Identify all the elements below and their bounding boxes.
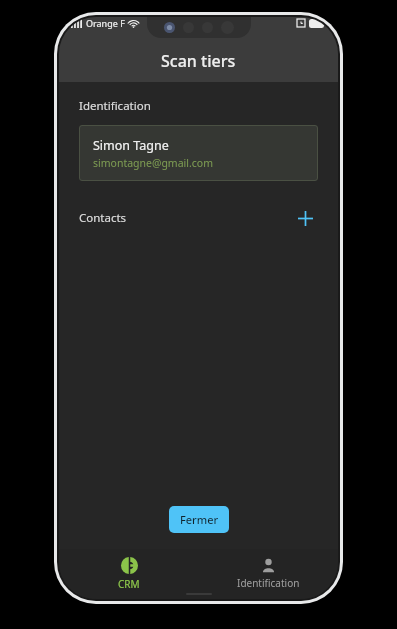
button[interactable]: Fermer [169, 506, 229, 533]
staticText: Identification [237, 576, 300, 590]
button[interactable]: Identification [198, 549, 338, 599]
staticText: Identification [79, 98, 151, 114]
button[interactable]: Add contact [292, 205, 318, 231]
button[interactable]: Simon Tagne [79, 125, 318, 181]
staticText: simontagne@gmail.com [93, 156, 213, 170]
staticText: Scan tiers [161, 50, 236, 72]
button[interactable]: CRM [59, 549, 198, 599]
staticText: CRM [118, 577, 140, 591]
staticText: Simon Tagne [93, 137, 169, 154]
staticText: Contacts [79, 210, 127, 226]
staticText: Orange F [86, 17, 125, 29]
staticText: Fermer [180, 512, 219, 527]
